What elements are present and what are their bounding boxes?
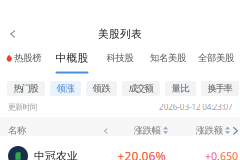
staticText: 领跌: [92, 83, 110, 94]
staticText: +20.06%: [117, 148, 165, 160]
button[interactable]: 领涨: [50, 81, 81, 96]
staticText: 量比: [171, 83, 189, 94]
staticText: 热股榜: [14, 52, 41, 64]
staticText: 科技股: [106, 52, 133, 64]
staticText: 2026-03-12 04:23:07: [159, 102, 233, 112]
button[interactable]: 热股榜: [0, 44, 48, 75]
staticText: 成交额: [128, 83, 153, 94]
button[interactable]: 量比: [165, 81, 196, 96]
button[interactable]: 涨跌幅: [111, 117, 168, 136]
button[interactable]: 领跌: [86, 81, 117, 96]
button[interactable]: More columns: [230, 117, 240, 136]
button[interactable]: 换手率: [201, 81, 239, 96]
staticText: 涨跌幅: [134, 124, 161, 136]
staticText: 领涨: [56, 83, 74, 94]
button[interactable]: 热门股: [7, 81, 45, 96]
staticText: 涨跌额: [196, 124, 223, 136]
button[interactable]: 中冠农业: [0, 137, 240, 160]
button[interactable]: 全部美股: [192, 44, 240, 75]
staticText: 全部美股: [198, 52, 234, 64]
staticText: 热门股: [13, 83, 38, 94]
staticText: 名称: [8, 124, 26, 136]
button[interactable]: 科技股: [96, 44, 144, 75]
staticText: +0.650: [205, 149, 238, 160]
staticText: 知名美股: [150, 52, 186, 64]
button[interactable]: 知名美股: [144, 44, 192, 75]
button[interactable]: 中概股: [48, 44, 96, 75]
button[interactable]: 成交额: [122, 81, 160, 96]
staticText: 换手率: [207, 83, 232, 94]
button[interactable]: Previous columns: [101, 117, 111, 136]
staticText: 中冠农业: [34, 149, 78, 160]
staticText: 更新时间: [8, 102, 38, 112]
staticText: 中概股: [55, 51, 88, 64]
button[interactable]: Back: [0, 23, 26, 45]
button[interactable]: 涨跌额: [168, 117, 230, 136]
staticText: 美股列表: [98, 27, 142, 40]
